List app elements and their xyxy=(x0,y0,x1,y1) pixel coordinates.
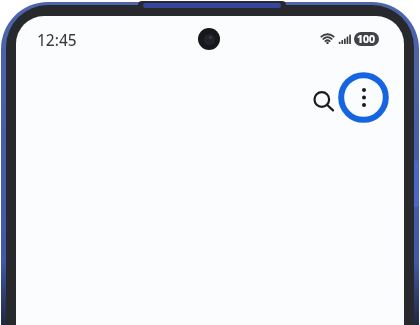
button[interactable] xyxy=(338,72,389,123)
button[interactable] xyxy=(302,80,342,120)
staticText: 100 xyxy=(357,32,376,46)
staticText: 12:45 xyxy=(37,29,77,50)
